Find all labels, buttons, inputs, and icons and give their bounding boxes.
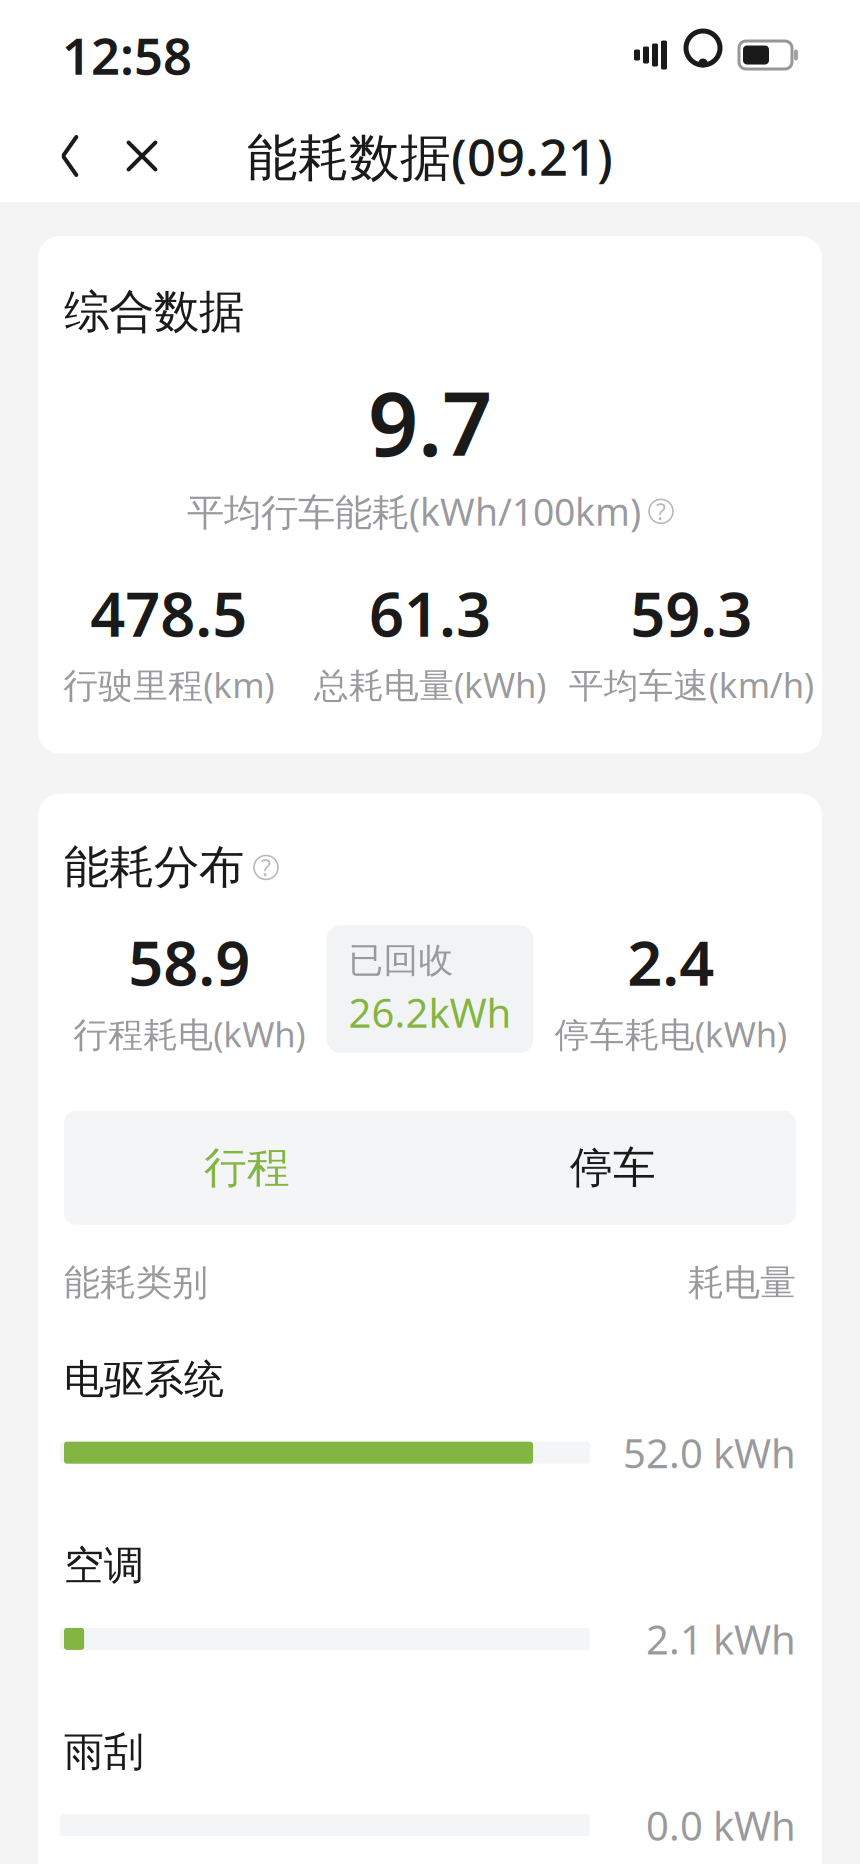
staticText: 能耗分布 xyxy=(64,840,244,895)
staticText: ? xyxy=(656,496,666,526)
button[interactable]: Back xyxy=(34,116,106,196)
staticText: 雨刮 xyxy=(64,1727,144,1777)
staticText: 平均行车能耗(kWh/100km) xyxy=(187,486,641,536)
staticText: 耗电量 xyxy=(688,1261,796,1305)
staticText: 空调 xyxy=(64,1541,144,1590)
staticText: 行程 xyxy=(204,1142,290,1194)
staticText: 总耗电量(kWh) xyxy=(314,662,546,708)
staticText: 能耗数据(09.21) xyxy=(247,122,613,190)
staticText: 停车耗电(kWh) xyxy=(555,1011,787,1057)
button[interactable]: 行程 xyxy=(64,1111,430,1225)
button[interactable]: Close xyxy=(106,116,178,196)
staticText: 平均车速(km/h) xyxy=(569,662,814,708)
staticText: 59.3 xyxy=(630,572,752,653)
staticText: 2.1 kWh xyxy=(646,1612,796,1665)
staticText: 12:58 xyxy=(62,21,192,89)
staticText: 综合数据 xyxy=(64,284,244,340)
staticText: 2.4 xyxy=(627,921,714,1003)
button[interactable]: 停车 xyxy=(430,1111,796,1225)
staticText: 58.9 xyxy=(128,921,250,1003)
staticText: 52.0 kWh xyxy=(623,1426,796,1479)
staticText: 9.7 xyxy=(368,364,492,481)
staticText: 能耗类别 xyxy=(64,1261,208,1305)
staticText: 电驱系统 xyxy=(64,1355,224,1404)
staticText: 停车 xyxy=(570,1142,656,1194)
staticText: 行驶里程(km) xyxy=(63,662,274,708)
staticText: 已回收 xyxy=(348,939,453,982)
staticText: 0.0 kWh xyxy=(646,1799,796,1852)
staticText: 行程耗电(kWh) xyxy=(73,1011,305,1057)
staticText: 478.5 xyxy=(90,572,247,653)
staticText: 26.2kWh xyxy=(348,986,511,1039)
staticText: 61.3 xyxy=(369,572,491,653)
staticText: ? xyxy=(261,852,271,882)
